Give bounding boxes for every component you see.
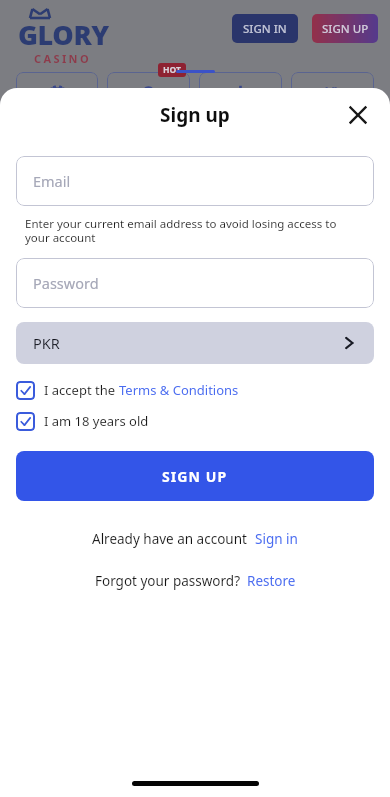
staticText: Already have an account: [92, 530, 247, 548]
staticText: PKR: [33, 333, 60, 353]
button[interactable]: SIGN UP: [16, 451, 374, 501]
button[interactable]: Restore: [247, 572, 296, 590]
staticText: Password: [33, 273, 99, 293]
button[interactable]: I am 18 years old: [16, 408, 374, 434]
button[interactable]: [16, 72, 98, 112]
button[interactable]: SIGN UP: [312, 14, 378, 43]
staticText: Sign up: [160, 102, 230, 128]
staticText: I accept the: [44, 381, 119, 399]
button[interactable]: I accept the: [16, 377, 374, 403]
staticText: SIGN UP: [162, 467, 228, 486]
staticText: Terms & Conditions: [119, 381, 239, 399]
button[interactable]: SIGN IN: [232, 14, 298, 43]
staticText: Email: [33, 171, 71, 191]
button[interactable]: Email: [16, 156, 374, 206]
button[interactable]: Password: [16, 258, 374, 308]
button[interactable]: [199, 72, 282, 112]
button[interactable]: Close: [340, 97, 376, 133]
staticText: HOT: [163, 64, 181, 76]
staticText: CASINO: [34, 51, 92, 66]
button[interactable]: Sign in: [255, 530, 298, 548]
staticText: GLORY: [18, 16, 109, 53]
staticText: Sign in: [255, 530, 298, 548]
button[interactable]: PKR: [16, 322, 374, 364]
button[interactable]: [107, 72, 190, 112]
staticText: Forgot your password?: [95, 572, 241, 590]
staticText: Restore: [247, 572, 296, 590]
button[interactable]: [291, 72, 374, 112]
staticText: I am 18 years old: [44, 412, 149, 430]
staticText: SIGN IN: [243, 21, 287, 37]
staticText: Enter your current email address to avoi…: [25, 216, 360, 245]
staticText: SIGN UP: [322, 21, 369, 37]
